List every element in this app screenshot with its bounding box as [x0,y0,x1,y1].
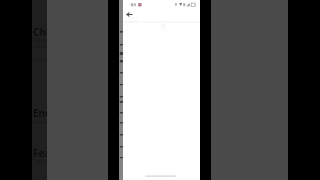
button[interactable]: Chec [32,0,108,180]
button[interactable]: Back [123,9,136,21]
staticText: Featu [33,146,47,160]
staticText: Ench [33,106,47,120]
button[interactable]: Back [119,0,200,180]
staticText: Chec [33,25,47,39]
